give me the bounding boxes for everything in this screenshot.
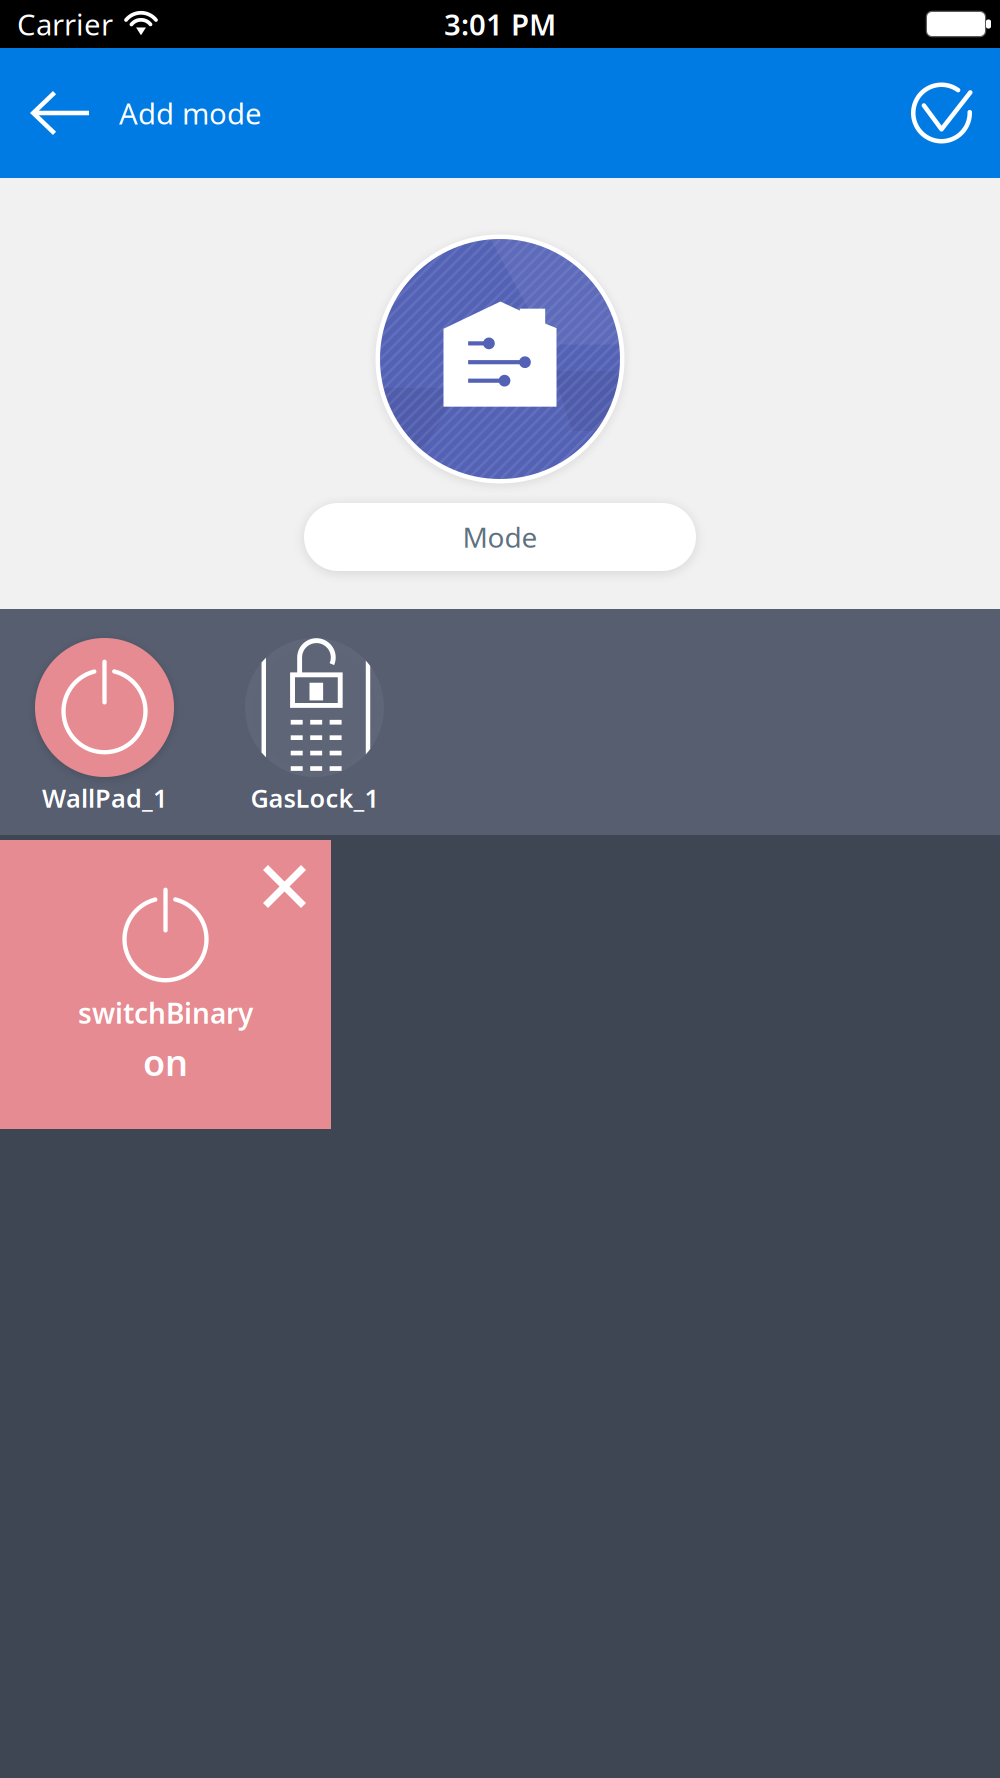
staticText: Add mode [119,93,262,132]
button[interactable]: Mode [304,503,696,571]
button[interactable]: switchBinary [0,840,331,1129]
staticText: Mode [462,518,537,556]
staticText: Carrier [17,4,113,43]
staticText: on [143,1038,188,1086]
staticText: GasLock_1 [250,781,378,815]
button[interactable]: Back [0,48,119,178]
staticText: 3:01 PM [444,4,556,43]
button[interactable]: Confirm [911,48,1000,178]
staticText: switchBinary [78,994,253,1032]
staticText: WallPad_1 [42,781,167,815]
button[interactable]: WallPad_1 [35,638,174,815]
button[interactable]: GasLock_1 [245,638,384,815]
